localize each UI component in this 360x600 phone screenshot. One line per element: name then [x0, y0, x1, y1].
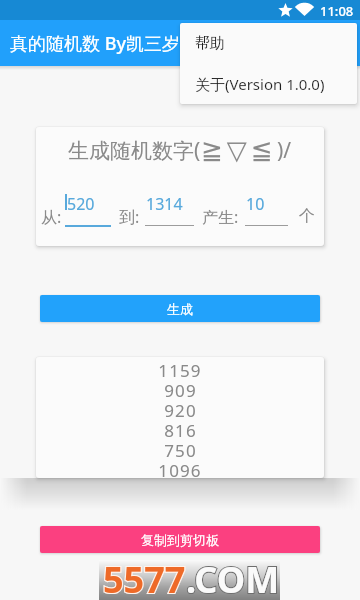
staticText: 真的随机数 By凯三岁: [10, 31, 180, 56]
button[interactable]: 复制到剪切板: [40, 526, 320, 553]
staticText: 帮助: [195, 34, 225, 53]
staticText: 生成随机数字(: [68, 136, 201, 165]
staticText: 520: [67, 193, 95, 215]
staticText: 750: [164, 439, 197, 459]
staticText: )/: [277, 136, 292, 165]
staticText: 生成: [167, 301, 193, 317]
staticText: 到:: [119, 206, 140, 228]
staticText: 产生:: [202, 206, 239, 228]
staticText: 1314: [146, 193, 183, 215]
staticText: 从:: [41, 206, 62, 228]
button[interactable]: 帮助: [180, 23, 357, 63]
staticText: ≧▽≦: [201, 135, 277, 165]
staticText: 5577: [103, 555, 186, 600]
staticText: 10: [246, 193, 265, 215]
staticText: .COM: [186, 555, 280, 600]
staticText: .COM: [186, 555, 280, 600]
staticText: 复制到剪切板: [141, 532, 219, 548]
staticText: 816: [164, 419, 197, 439]
staticText: 909: [164, 379, 197, 399]
staticText: 关于(Version 1.0.0): [195, 74, 325, 94]
button[interactable]: 生成: [40, 295, 320, 322]
staticText: 5577: [103, 555, 186, 600]
staticText: 1159: [158, 359, 202, 379]
staticText: 个: [299, 206, 315, 226]
staticText: 920: [164, 399, 197, 419]
button[interactable]: 关于(Version 1.0.0): [180, 63, 357, 104]
staticText: 11:08: [320, 2, 354, 20]
staticText: 1096: [158, 459, 202, 478]
